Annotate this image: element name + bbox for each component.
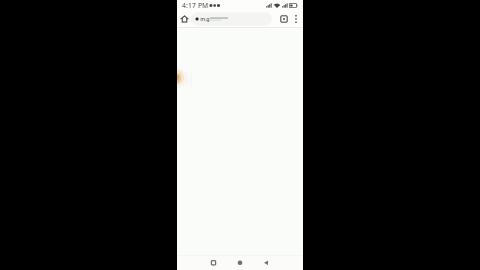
button[interactable]: Address and search bar — [191, 12, 272, 26]
button[interactable]: Switch or close tabs — [278, 11, 290, 27]
button[interactable]: Home — [178, 11, 191, 27]
staticText: m.g — [200, 15, 209, 23]
staticText: 4:17 PM — [182, 1, 208, 10]
button[interactable]: Customize and control Chrome — [290, 11, 302, 27]
button[interactable]: Home — [227, 256, 253, 270]
button[interactable]: Recent apps — [200, 256, 227, 270]
button[interactable]: Back — [253, 256, 279, 270]
